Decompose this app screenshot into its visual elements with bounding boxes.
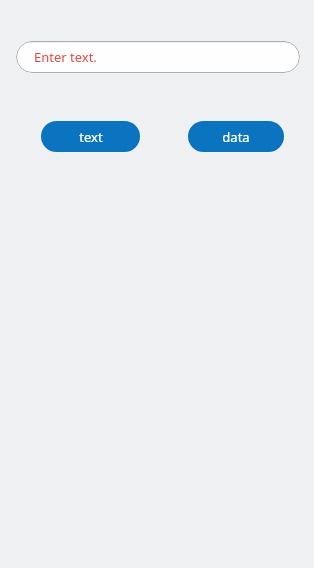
button[interactable]: data — [188, 121, 284, 152]
staticText: Enter text. — [34, 48, 97, 66]
staticText: text — [79, 128, 103, 146]
button[interactable]: text — [41, 121, 140, 152]
staticText: data — [222, 128, 250, 146]
button[interactable]: Enter text. — [16, 41, 300, 73]
